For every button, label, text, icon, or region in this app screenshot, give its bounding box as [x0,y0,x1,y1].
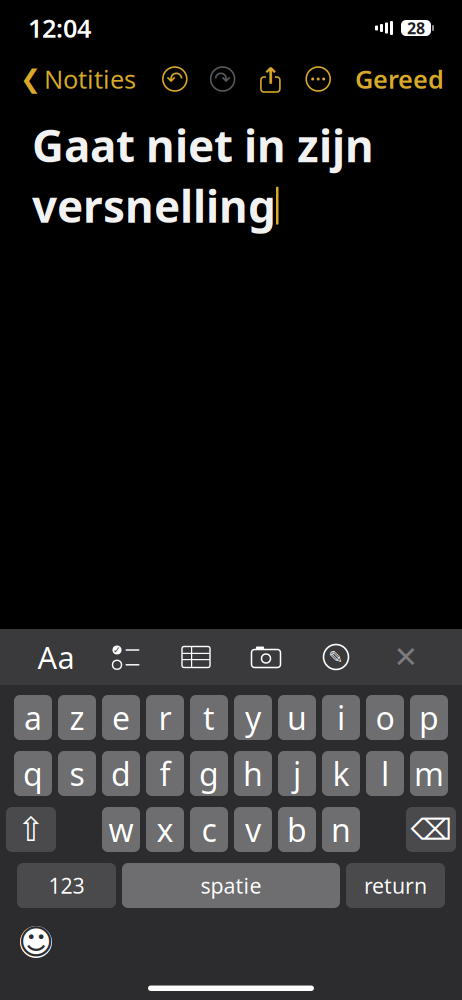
staticText: w [108,808,133,851]
staticText: i [337,696,345,739]
staticText: ✕ [393,640,418,674]
staticText: v [245,808,261,851]
staticText: spatie [200,871,261,900]
staticText: ☺ [18,922,54,962]
staticText: Gereed [355,62,444,96]
button[interactable]: y [234,695,272,740]
staticText: a [24,696,42,739]
staticText: c [201,808,216,851]
staticText: Gaat niet in zijn [32,116,374,174]
staticText: 123 [48,871,84,900]
button[interactable]: w [102,807,140,852]
button[interactable]: return [346,863,445,908]
staticText: x [156,808,173,851]
staticText: u [287,696,307,739]
staticText: ✎ [328,647,343,667]
button[interactable]: 123 [17,863,116,908]
button[interactable]: Table [174,637,218,677]
staticText: 12:04 [28,11,91,45]
button[interactable]: v [234,807,272,852]
button[interactable]: x [146,807,184,852]
staticText: Notities [44,62,136,96]
button[interactable]: m [410,751,448,796]
staticText: ↶ [166,68,183,90]
button[interactable]: Emoji [14,920,58,964]
button[interactable]: Undo [156,64,194,94]
staticText: h [243,752,263,795]
staticText: y [245,696,261,739]
button[interactable]: n [322,807,360,852]
staticText: ❮ [20,65,41,93]
button[interactable]: Redo [204,64,242,94]
button[interactable]: Markup [314,637,358,677]
button[interactable]: j [278,751,316,796]
button[interactable]: s [58,751,96,796]
staticText: ↷ [214,68,231,90]
button[interactable]: r [146,695,184,740]
staticText: q [23,752,43,795]
staticText: j [293,752,301,795]
staticText: ⇧ [17,811,45,848]
staticText: g [199,752,219,795]
button[interactable]: k [322,751,360,796]
button[interactable]: q [14,751,52,796]
staticText: d [111,752,131,795]
staticText: p [419,696,439,739]
button[interactable]: Close keyboard [384,637,428,677]
button[interactable]: More [299,64,337,94]
button[interactable]: z [58,695,96,740]
button[interactable]: Shift [6,807,56,852]
staticText: e [112,696,130,739]
staticText: f [159,752,170,795]
button[interactable]: ❮ [10,54,146,104]
staticText: o [375,696,394,739]
staticText: t [203,696,215,739]
button[interactable]: e [102,695,140,740]
button[interactable]: f [146,751,184,796]
staticText: r [158,696,171,739]
button[interactable]: a [14,695,52,740]
button[interactable]: i [322,695,360,740]
button[interactable]: t [190,695,228,740]
staticText: s [69,752,84,795]
button[interactable]: b [278,807,316,852]
button[interactable]: spatie [122,863,340,908]
staticText: b [287,808,307,851]
staticText: z [69,696,84,739]
button[interactable]: h [234,751,272,796]
staticText: ⌫ [410,813,451,846]
button[interactable]: Backspace [406,807,456,852]
button[interactable]: d [102,751,140,796]
button[interactable]: p [410,695,448,740]
staticText: ✓ [113,645,121,655]
button[interactable]: u [278,695,316,740]
button[interactable]: Camera [244,637,288,677]
button[interactable]: Checklist [104,637,148,677]
button[interactable]: Text format [34,637,78,677]
staticText: l [381,752,389,795]
staticText: k [332,752,349,795]
button[interactable]: o [366,695,404,740]
button[interactable]: Share [251,64,289,94]
staticText: ↑ [261,63,280,89]
staticText: Aa [37,637,74,677]
staticText: versnelling [32,176,276,235]
button[interactable]: g [190,751,228,796]
staticText: 28 [407,17,425,39]
staticText: n [331,808,351,851]
staticText: return [364,871,427,900]
button[interactable]: l [366,751,404,796]
button[interactable]: c [190,807,228,852]
staticText: m [414,752,444,795]
button[interactable]: Gereed [347,54,452,104]
